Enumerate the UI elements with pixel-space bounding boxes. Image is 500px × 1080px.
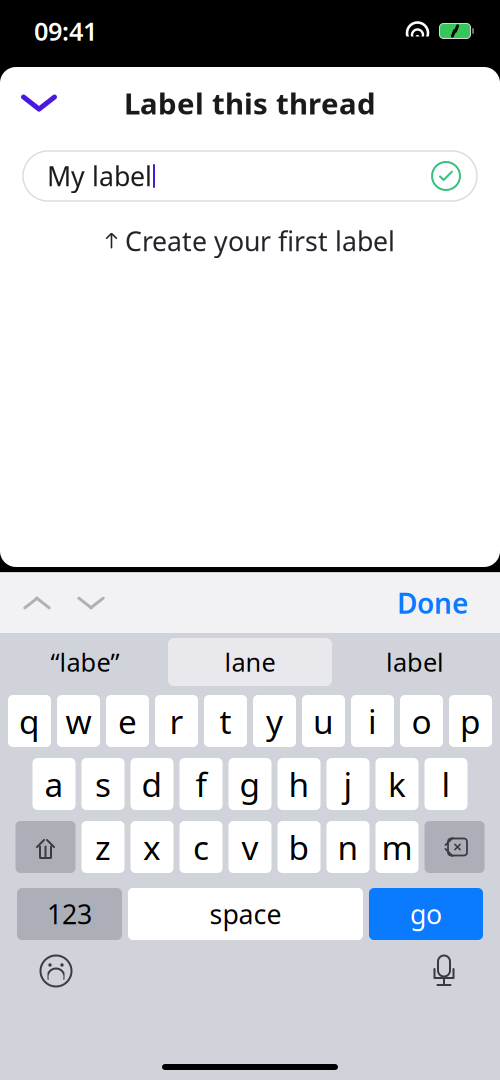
staticText: r (169, 699, 183, 743)
staticText: e (118, 699, 137, 743)
button[interactable]: z (81, 821, 124, 873)
staticText: o (411, 699, 431, 743)
staticText: “labe” (50, 645, 119, 679)
button[interactable]: a (32, 758, 75, 810)
button[interactable]: m (375, 821, 418, 873)
button[interactable]: space (128, 888, 363, 940)
button[interactable]: Dismiss (12, 81, 66, 125)
staticText: Done (397, 584, 468, 622)
button[interactable]: d (130, 758, 173, 810)
button[interactable]: label (332, 638, 498, 686)
button[interactable]: h (277, 758, 320, 810)
button[interactable]: Shift (15, 821, 75, 873)
button[interactable]: y (253, 695, 296, 747)
staticText: Create your first label (125, 223, 395, 259)
staticText: b (288, 825, 309, 869)
staticText: i (368, 699, 377, 743)
staticText: s (95, 762, 111, 806)
staticText: lane (224, 645, 275, 679)
staticText: l (441, 762, 450, 806)
staticText: g (239, 762, 260, 806)
button[interactable]: 123 (17, 888, 122, 940)
button[interactable]: Dictate (414, 948, 474, 994)
button[interactable]: b (277, 821, 320, 873)
button[interactable]: g (228, 758, 271, 810)
button[interactable]: Create your first label (105, 221, 395, 261)
staticText: f (195, 762, 206, 806)
button[interactable]: go (369, 888, 483, 940)
staticText: u (313, 699, 334, 743)
staticText: t (219, 699, 231, 743)
staticText: label (386, 645, 444, 679)
staticText: 09:41 (34, 14, 97, 48)
staticText: go (410, 896, 442, 932)
staticText: c (193, 825, 209, 869)
button[interactable]: x (130, 821, 173, 873)
staticText: p (460, 699, 481, 743)
staticText: k (388, 762, 406, 806)
staticText: space (209, 896, 281, 932)
button[interactable]: t (204, 695, 247, 747)
button[interactable]: q (8, 695, 51, 747)
staticText: Label this thread (124, 83, 376, 122)
staticText: My label (47, 158, 152, 194)
staticText: a (44, 762, 63, 806)
button[interactable]: c (179, 821, 222, 873)
button[interactable]: Next field (64, 581, 118, 625)
button[interactable]: Done (387, 581, 478, 625)
button[interactable]: p (449, 695, 492, 747)
button[interactable]: “labe” (2, 638, 168, 686)
button[interactable]: v (228, 821, 271, 873)
button[interactable]: f (179, 758, 222, 810)
button[interactable]: Emoji (26, 948, 86, 994)
button[interactable]: r (155, 695, 198, 747)
button[interactable]: l (424, 758, 467, 810)
staticText: n (337, 825, 358, 869)
staticText: q (19, 699, 40, 743)
button[interactable]: u (302, 695, 345, 747)
button[interactable]: Delete (424, 821, 484, 873)
button[interactable]: Previous field (10, 581, 64, 625)
staticText: h (288, 762, 309, 806)
staticText: w (65, 699, 91, 743)
staticText: v (241, 825, 258, 869)
button[interactable]: n (326, 821, 369, 873)
button[interactable]: o (400, 695, 443, 747)
staticText: m (381, 825, 412, 869)
button[interactable]: s (81, 758, 124, 810)
button[interactable]: lane (168, 638, 332, 686)
staticText: 123 (47, 896, 92, 932)
staticText: z (95, 825, 111, 869)
button[interactable]: i (351, 695, 394, 747)
staticText: x (143, 825, 161, 869)
staticText: j (343, 762, 352, 806)
button[interactable]: e (106, 695, 149, 747)
button[interactable]: j (326, 758, 369, 810)
staticText: y (266, 699, 283, 743)
button[interactable]: k (375, 758, 418, 810)
button[interactable]: w (57, 695, 100, 747)
staticText: d (141, 762, 162, 806)
